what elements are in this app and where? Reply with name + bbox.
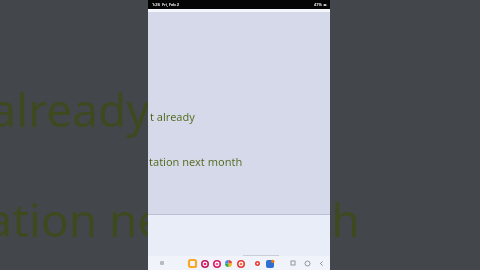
staticText: 41% [314, 2, 322, 7]
button[interactable]: App [188, 259, 197, 268]
button[interactable]: App [265, 259, 274, 268]
button[interactable]: Recent apps [289, 259, 297, 267]
staticText: t already [0, 78, 150, 141]
button[interactable]: App [200, 259, 209, 268]
button[interactable]: Back [317, 259, 325, 267]
button[interactable]: App [212, 259, 221, 268]
staticText: tation next month [149, 154, 243, 169]
button[interactable]: t already [148, 109, 330, 124]
button[interactable]: Menu [160, 261, 164, 265]
button[interactable]: App [253, 259, 262, 268]
staticText: 1:26 Fri, Feb 2 [152, 2, 180, 7]
button[interactable]: App [236, 259, 245, 268]
button[interactable]: Home [303, 259, 311, 267]
staticText: t already [150, 109, 195, 124]
button[interactable]: tation next month [148, 154, 330, 169]
staticText: tation next month [0, 188, 360, 251]
button[interactable]: Photos [224, 259, 233, 268]
